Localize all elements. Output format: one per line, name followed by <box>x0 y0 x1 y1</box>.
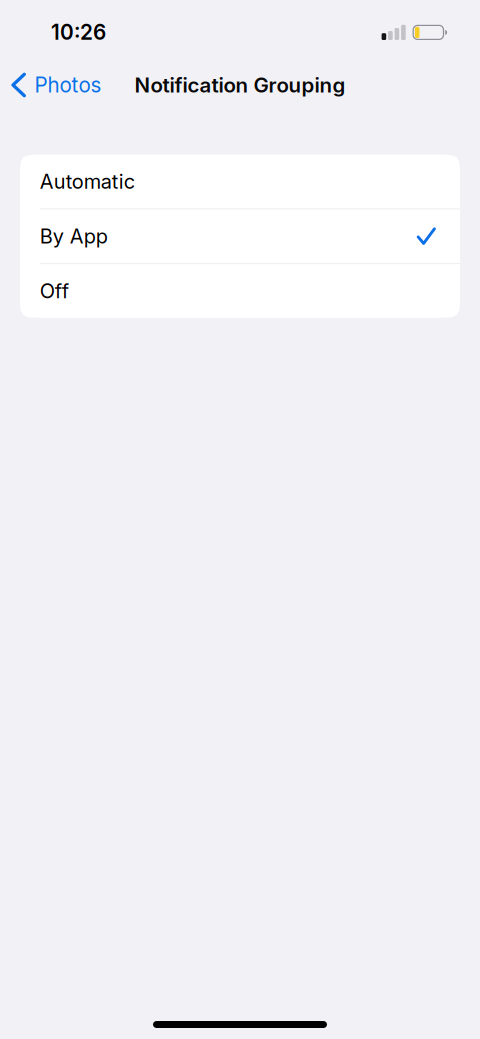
staticText: Automatic <box>40 169 135 194</box>
staticText: Photos <box>35 72 102 97</box>
button[interactable]: Back to Photos <box>0 64 112 105</box>
button[interactable]: Off <box>20 264 460 318</box>
staticText: By App <box>40 224 108 248</box>
button[interactable]: By App <box>20 209 460 263</box>
staticText: Notification Grouping <box>134 73 345 97</box>
staticText: 10:26 <box>51 20 106 45</box>
button[interactable]: Automatic <box>20 155 460 208</box>
staticText: Off <box>40 279 69 303</box>
